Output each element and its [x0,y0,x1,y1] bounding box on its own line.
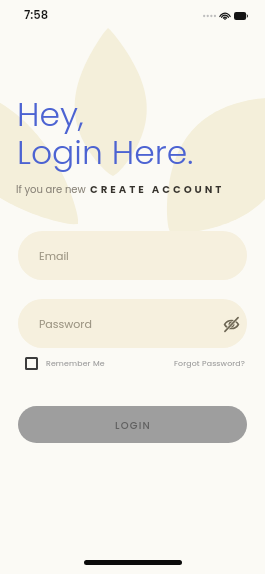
button[interactable]: LOGIN [18,406,247,443]
staticText: LOGIN [115,418,151,432]
staticText: Hey, Login Here. [17,91,194,175]
staticText: If you are new [16,182,86,196]
button[interactable]: CREATE ACCOUNT [90,182,225,196]
staticText: Password [39,316,92,331]
button[interactable]: Show password [216,309,246,339]
staticText: Email [39,248,69,263]
button[interactable]: Email [18,231,247,280]
button[interactable]: Forgot Password? [174,358,245,369]
staticText: Forgot Password? [174,358,245,369]
staticText: 7:58 [24,7,49,23]
button[interactable]: Remember Me [25,357,105,370]
staticText: Remember Me [46,358,105,369]
staticText: CREATE ACCOUNT [90,182,225,196]
button[interactable]: Password [18,299,247,348]
